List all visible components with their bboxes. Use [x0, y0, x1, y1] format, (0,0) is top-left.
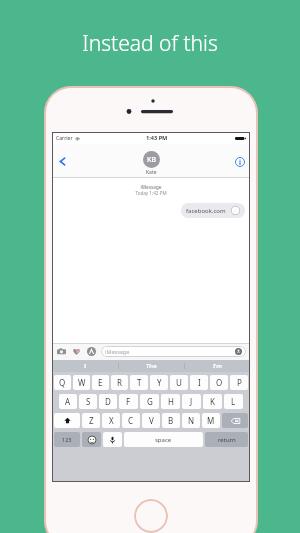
button[interactable]: K — [203, 394, 222, 409]
button[interactable]: J — [182, 394, 201, 409]
staticText: KB — [147, 155, 157, 165]
button[interactable]: KB — [143, 151, 160, 176]
staticText: Kate — [146, 169, 157, 176]
button[interactable]: Apps — [86, 346, 97, 357]
staticText: Carrier — [56, 135, 73, 142]
staticText: W — [78, 377, 86, 388]
button[interactable]: Details — [232, 154, 247, 169]
staticText: I'm — [213, 362, 223, 370]
staticText: F — [126, 396, 131, 407]
staticText: G — [147, 396, 153, 407]
staticText: L — [231, 396, 236, 407]
staticText: E — [98, 377, 103, 388]
button[interactable]: Dictation — [103, 432, 122, 447]
button[interactable]: facebook.com — [181, 203, 245, 218]
staticText: iMessage — [105, 348, 130, 355]
staticText: 1:43 PM — [146, 134, 168, 142]
button[interactable]: W — [73, 375, 90, 390]
staticText: return — [218, 436, 236, 444]
staticText: I — [84, 362, 87, 370]
staticText: R — [117, 377, 122, 388]
button[interactable]: N — [182, 413, 200, 428]
button[interactable]: U — [170, 375, 188, 390]
staticText: A — [65, 396, 71, 407]
staticText: T — [137, 377, 142, 388]
staticText: Q — [59, 377, 66, 388]
button[interactable]: O — [210, 375, 228, 390]
button[interactable]: iMessage — [101, 346, 246, 357]
staticText: S — [86, 396, 91, 407]
button[interactable]: A — [59, 394, 77, 409]
button[interactable]: T — [130, 375, 148, 390]
button[interactable]: C — [122, 413, 140, 428]
button[interactable]: Shift — [54, 413, 80, 428]
button[interactable]: Q — [54, 375, 71, 390]
staticText: D — [105, 396, 111, 407]
button[interactable]: X — [102, 413, 120, 428]
button[interactable]: I — [190, 375, 208, 390]
button[interactable]: Z — [82, 413, 100, 428]
staticText: J — [190, 396, 193, 407]
staticText: X — [109, 415, 114, 426]
staticText: C — [128, 415, 134, 426]
button[interactable]: The — [119, 360, 184, 372]
button[interactable]: B — [162, 413, 180, 428]
button[interactable]: Y — [150, 375, 168, 390]
staticText: The — [146, 362, 157, 370]
button[interactable]: space — [124, 432, 203, 447]
button[interactable]: E — [92, 375, 109, 390]
button[interactable]: G — [140, 394, 159, 409]
staticText: Instead of this — [82, 29, 218, 58]
button[interactable]: I'm — [185, 360, 250, 372]
staticText: Today 1:42 PM — [52, 190, 250, 196]
button[interactable]: P — [230, 375, 248, 390]
button[interactable]: S — [79, 394, 97, 409]
staticText: Y — [157, 377, 162, 388]
staticText: iMessage — [52, 184, 250, 190]
staticText: facebook.com — [186, 207, 226, 215]
button[interactable]: Camera — [56, 346, 67, 357]
button[interactable]: Back — [54, 153, 70, 169]
staticText: M — [207, 415, 215, 426]
button[interactable]: 123 — [54, 432, 80, 447]
staticText: O — [216, 377, 223, 388]
staticText: U — [176, 377, 182, 388]
button[interactable]: D — [99, 394, 117, 409]
staticText: K — [210, 396, 215, 407]
button[interactable]: return — [205, 432, 248, 447]
staticText: B — [168, 415, 174, 426]
button[interactable]: M — [202, 413, 220, 428]
button[interactable]: H — [161, 394, 180, 409]
button[interactable]: Home — [134, 499, 168, 533]
button[interactable]: Digital Touch — [71, 346, 82, 357]
button[interactable]: Backspace — [222, 413, 248, 428]
staticText: V — [149, 415, 154, 426]
staticText: I — [198, 377, 201, 388]
staticText: 123 — [62, 436, 72, 443]
staticText: space — [155, 436, 172, 444]
button[interactable]: Emoji — [82, 432, 101, 447]
button[interactable]: L — [224, 394, 243, 409]
button[interactable]: I — [52, 360, 118, 372]
staticText: H — [168, 396, 174, 407]
button[interactable]: F — [119, 394, 138, 409]
staticText: P — [237, 377, 242, 388]
button[interactable]: V — [142, 413, 160, 428]
staticText: N — [188, 415, 195, 426]
button[interactable]: R — [111, 375, 128, 390]
staticText: Z — [89, 415, 94, 426]
